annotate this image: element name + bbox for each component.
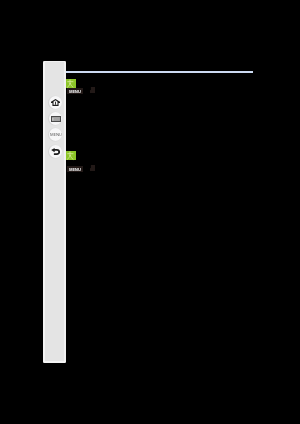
button[interactable]: Recent apps <box>47 110 63 126</box>
button[interactable]: App icon <box>66 79 76 88</box>
staticText: MENU <box>69 167 81 172</box>
staticText: MENU <box>50 132 62 137</box>
staticText: MENU <box>69 89 81 94</box>
button[interactable]: Home <box>47 94 63 110</box>
button[interactable]: Open app <box>90 165 95 171</box>
button[interactable]: Back <box>47 143 63 159</box>
button[interactable]: MENU <box>67 88 83 94</box>
button[interactable]: Open app <box>90 87 95 93</box>
button[interactable]: App icon <box>66 151 76 160</box>
button[interactable]: Menu <box>47 126 63 142</box>
button[interactable]: MENU <box>67 166 83 172</box>
